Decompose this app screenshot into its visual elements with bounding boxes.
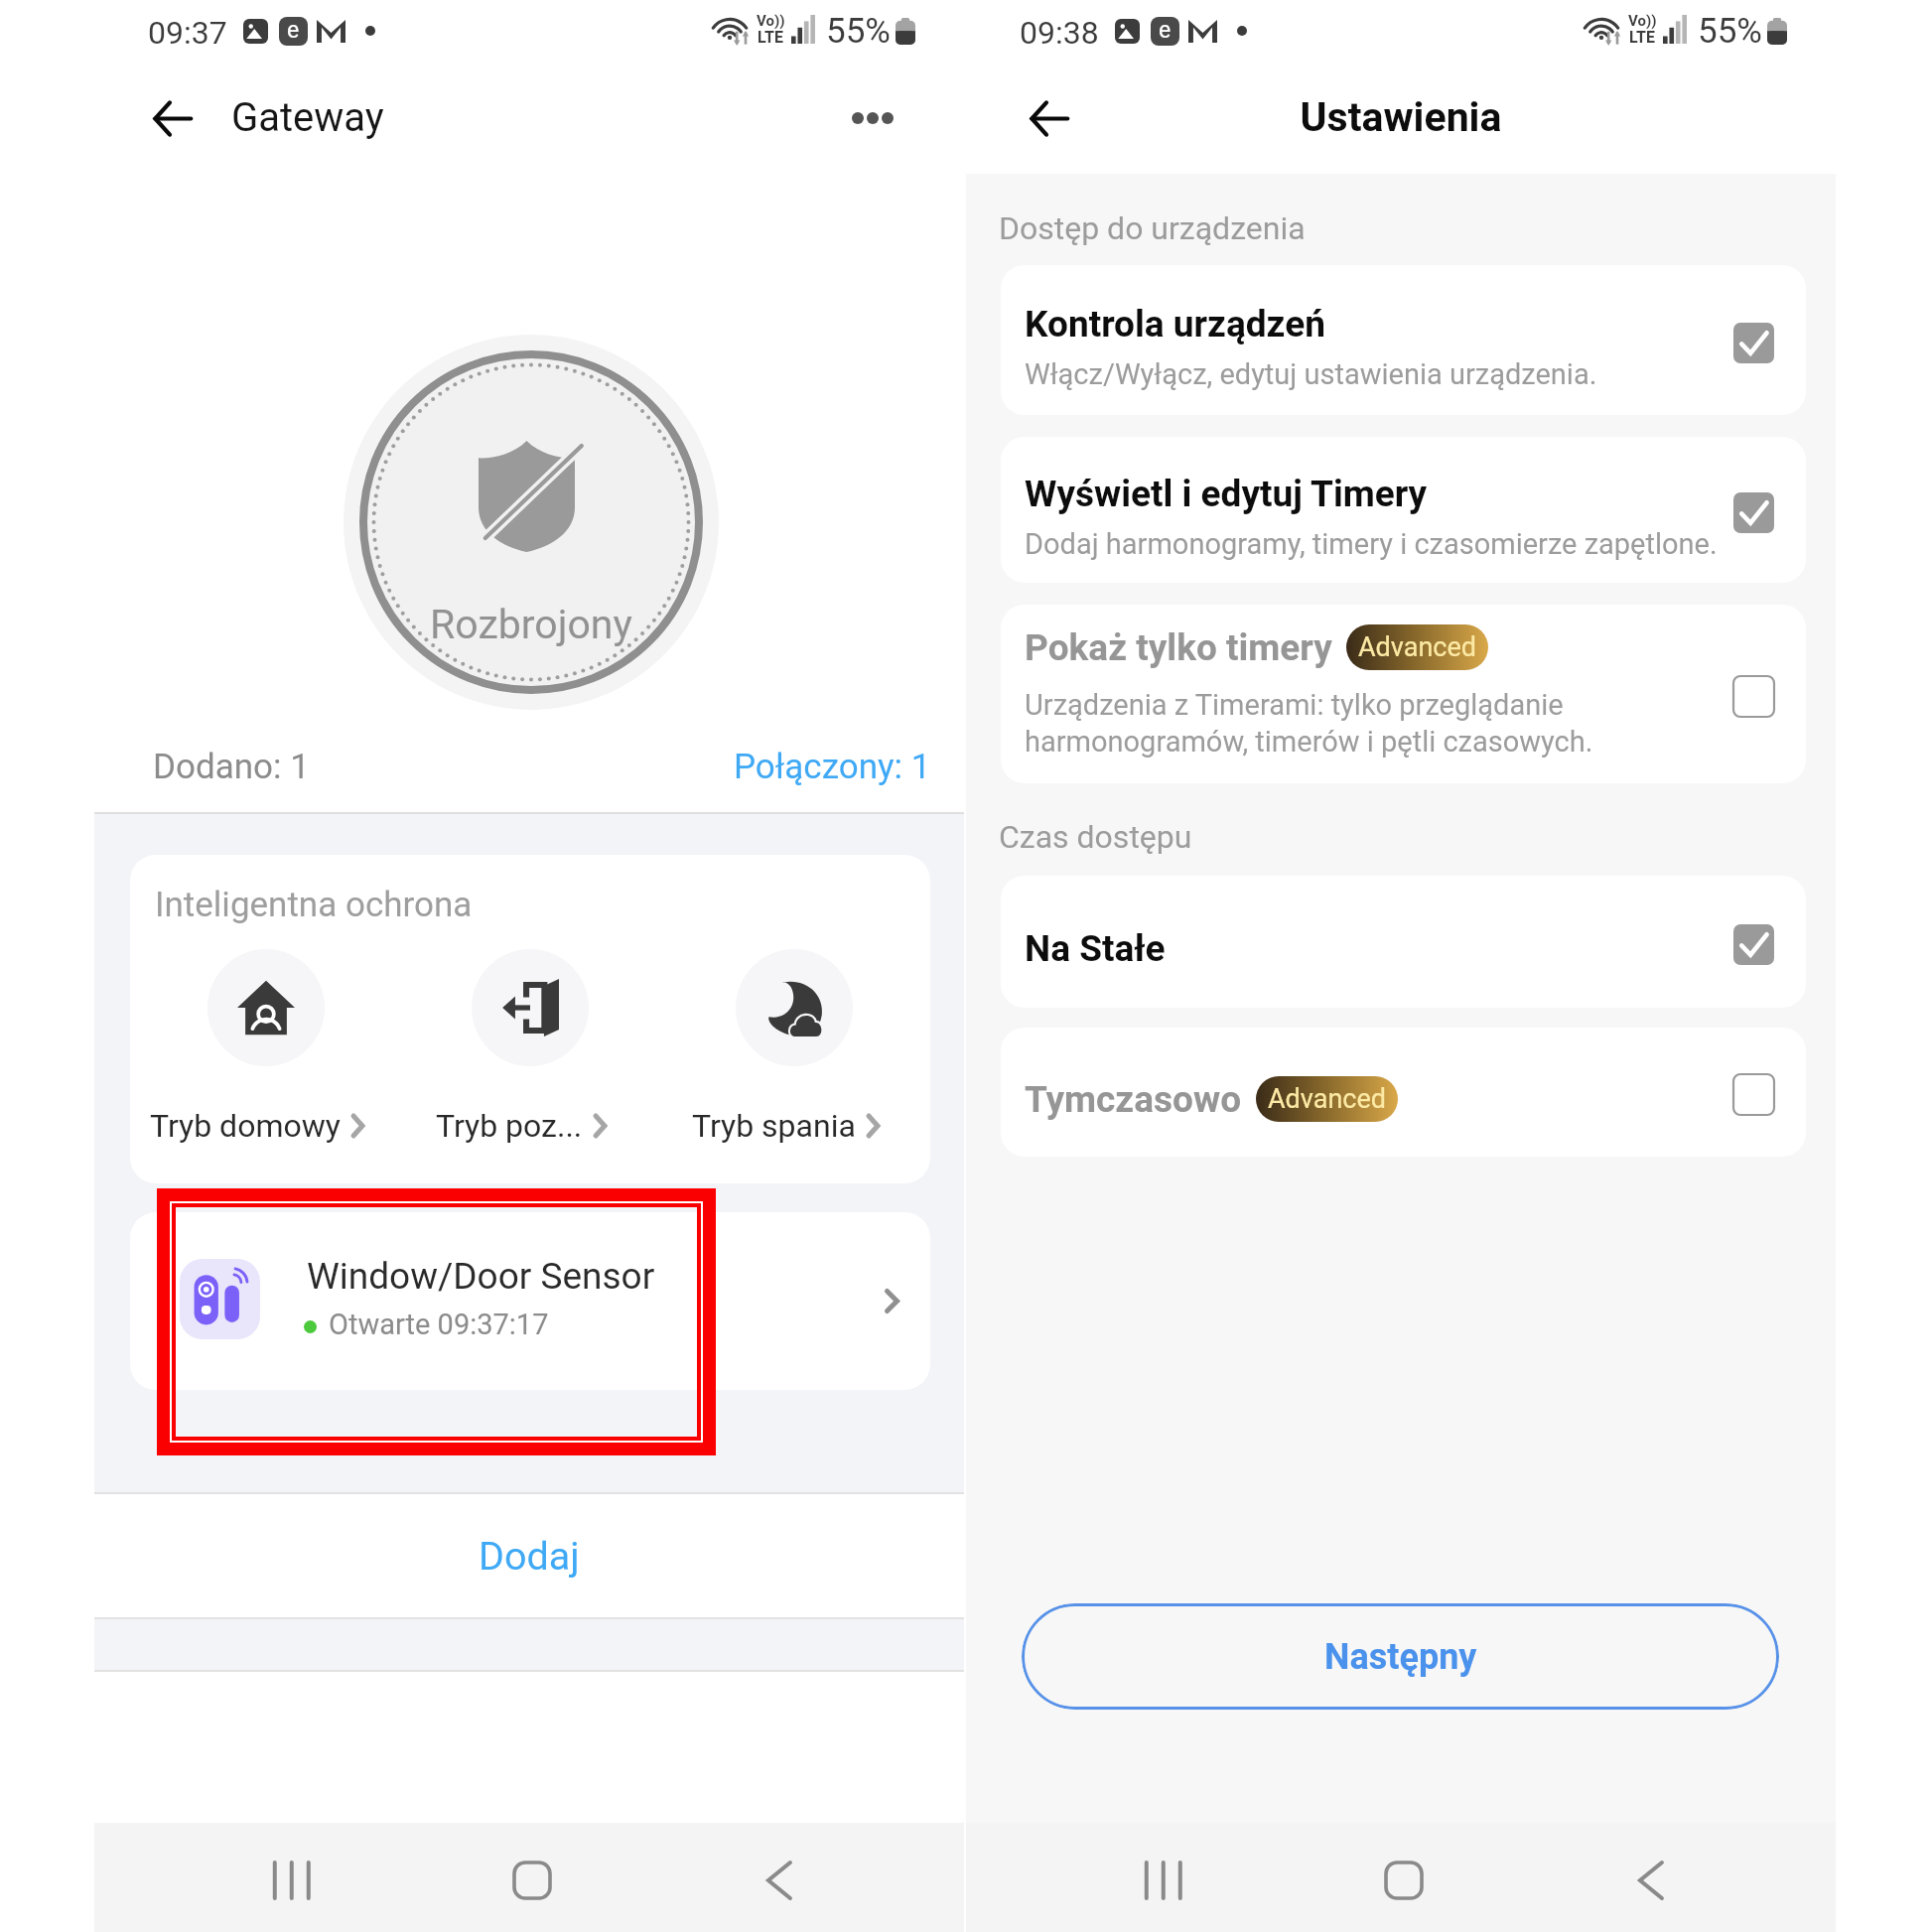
staticText: e — [1159, 17, 1172, 44]
button[interactable]: Tryb spania — [661, 942, 927, 1151]
button[interactable]: Na Stałe — [1719, 909, 1788, 979]
staticText: Inteligentna ochrona — [155, 885, 473, 925]
button[interactable]: Window/Door Sensor — [130, 1212, 930, 1390]
button[interactable]: Tymczasowo — [1719, 1059, 1788, 1129]
staticText: Czas dostępu — [999, 818, 1192, 856]
staticText: Ustawienia — [966, 93, 1836, 141]
staticText: Urządzenia z Timerami: tylko przeglądani… — [1025, 688, 1593, 759]
staticText: Dostęp do urządzenia — [999, 209, 1306, 247]
staticText: Tryb domowy — [150, 1107, 341, 1145]
staticText: Window/Door Sensor — [307, 1255, 655, 1298]
staticText: 55% — [1698, 11, 1762, 52]
button[interactable]: Kontrola urządzeń — [1001, 265, 1806, 415]
staticText: Vo)) — [757, 12, 785, 30]
staticText: Następny — [1324, 1636, 1477, 1678]
staticText: Włącz/Wyłącz, edytuj ustawienia urządzen… — [1025, 357, 1597, 391]
staticText: Pokaż tylko timery — [1025, 626, 1332, 669]
staticText: LTE — [758, 28, 783, 47]
staticText: Gateway — [231, 94, 384, 141]
button[interactable]: Wyświetl i edytuj Timery — [1719, 478, 1788, 547]
button[interactable]: Na Stałe — [1001, 876, 1806, 1008]
staticText: Advanced — [1268, 1083, 1386, 1115]
staticText: LTE — [1629, 28, 1655, 47]
button[interactable]: Tryb poz... — [397, 942, 663, 1151]
button[interactable]: Następny — [1022, 1603, 1779, 1710]
staticText: Dodaj harmonogramy, timery i czasomierze… — [1025, 527, 1718, 561]
staticText: Połączony: 1 — [734, 747, 931, 787]
staticText: Dodaj — [479, 1533, 580, 1579]
staticText: Advanced — [1358, 631, 1476, 663]
button[interactable]: Dodaj — [94, 1494, 964, 1617]
staticText: Tryb poz... — [436, 1107, 583, 1145]
button[interactable]: Back — [1012, 81, 1085, 155]
staticText: Tryb spania — [692, 1107, 856, 1145]
button[interactable]: Pokaż tylko timery — [1001, 605, 1806, 783]
staticText: 09:38 — [1020, 14, 1099, 52]
staticText: Wyświetl i edytuj Timery — [1025, 473, 1428, 515]
staticText: Otwarte 09:37:17 — [329, 1308, 549, 1341]
staticText: Vo)) — [1628, 12, 1657, 30]
staticText: 09:37 — [148, 14, 227, 52]
staticText: Dodano: 1 — [153, 747, 310, 787]
staticText: Na Stałe — [1025, 927, 1166, 970]
button[interactable]: Tryb domowy — [133, 942, 399, 1151]
button[interactable]: Back — [135, 81, 208, 155]
staticText: Rozbrojony — [344, 601, 719, 648]
button[interactable]: More options — [820, 81, 894, 155]
button[interactable]: Wyświetl i edytuj Timery — [1001, 437, 1806, 583]
button[interactable]: Tymczasowo — [1001, 1028, 1806, 1157]
staticText: 55% — [826, 11, 891, 52]
staticText: Tymczasowo — [1025, 1078, 1242, 1121]
button[interactable]: Pokaż tylko timery — [1719, 661, 1788, 731]
staticText: e — [287, 17, 300, 44]
button[interactable]: Kontrola urządzeń — [1719, 308, 1788, 377]
staticText: Kontrola urządzeń — [1025, 303, 1325, 345]
